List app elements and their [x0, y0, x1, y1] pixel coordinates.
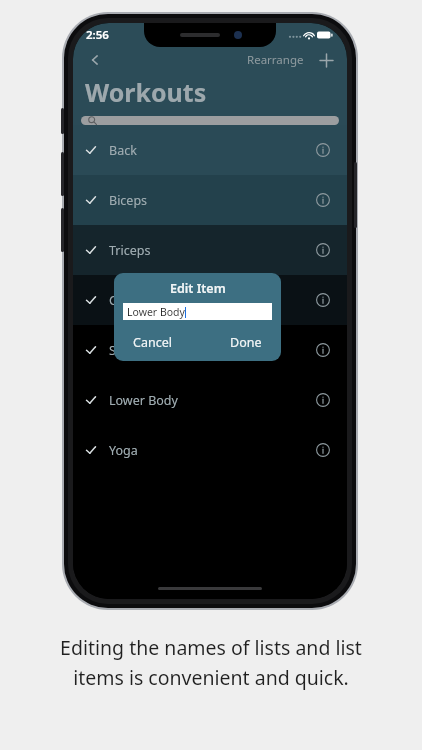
staticText: Back: [109, 142, 137, 159]
staticText: Lower Body: [109, 392, 178, 409]
button[interactable]: Add: [316, 50, 336, 70]
staticText: Workouts: [85, 75, 207, 109]
staticText: Triceps: [109, 242, 151, 259]
button[interactable]: Info for Back: [312, 139, 334, 161]
button[interactable]: Back: [84, 49, 106, 71]
staticText: Done: [230, 334, 262, 351]
button[interactable]: Info for Shoulders: [312, 339, 334, 361]
button[interactable]: Done: [224, 331, 268, 354]
staticText: Rearrange: [247, 52, 304, 68]
button[interactable]: Back: [73, 125, 347, 175]
button[interactable]: Lower Body: [73, 375, 347, 425]
button[interactable]: [81, 116, 339, 125]
staticText: Yoga: [109, 442, 138, 459]
button[interactable]: Info for Triceps: [312, 239, 334, 261]
button[interactable]: Shoulders: [73, 325, 347, 375]
button[interactable]: Info for Lower Body: [312, 389, 334, 411]
staticText: Biceps: [109, 192, 148, 209]
button[interactable]: Triceps: [73, 225, 347, 275]
button[interactable]: Lower Body: [123, 303, 272, 320]
button[interactable]: Yoga: [73, 425, 347, 475]
staticText: Chest: [109, 292, 143, 309]
staticText: Cancel: [133, 334, 172, 351]
staticText: items is convenient and quick.: [18, 664, 404, 691]
staticText: Shoulders: [109, 342, 168, 359]
button[interactable]: Rearrange: [244, 49, 307, 71]
button[interactable]: Info for Biceps: [312, 189, 334, 211]
button[interactable]: Cancel: [127, 331, 178, 354]
button[interactable]: Chest: [73, 275, 347, 325]
button[interactable]: Info for Chest: [312, 289, 334, 311]
button[interactable]: Info for Yoga: [312, 439, 334, 461]
staticText: Edit Item: [170, 280, 226, 297]
staticText: Editing the names of lists and list: [18, 634, 404, 661]
staticText: 2:56: [86, 27, 109, 43]
button[interactable]: Biceps: [73, 175, 347, 225]
staticText: Lower Body: [127, 305, 185, 319]
